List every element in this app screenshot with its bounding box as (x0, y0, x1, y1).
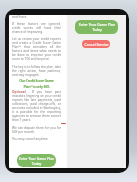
staticText: If these factors are ignored, credit sco… (12, 22, 61, 34)
staticText: You may cancel anytime. (12, 137, 61, 141)
staticText: Let us review your credit reports and cr… (12, 37, 61, 61)
staticText: and there. (12, 15, 61, 19)
staticText: Enter Your Game Plan Today (79, 22, 115, 32)
staticText: Optional - If you have past mistakes lin… (12, 90, 61, 122)
staticText: Cancel Service (84, 42, 109, 47)
button[interactable]: Cancel Service (82, 40, 110, 48)
staticText: Our Credit Score Game Plan℠ is only $69. (12, 78, 61, 89)
staticText: The key is to follow the plan, take the … (12, 65, 61, 77)
button[interactable]: Enter Your Game Plan Today (17, 154, 56, 167)
staticText: Enter Your Game Plan Today (19, 156, 54, 166)
button[interactable]: Enter Your Game Plan Today (75, 20, 118, 34)
staticText: We can dispute them for you for $49 per … (12, 126, 61, 134)
